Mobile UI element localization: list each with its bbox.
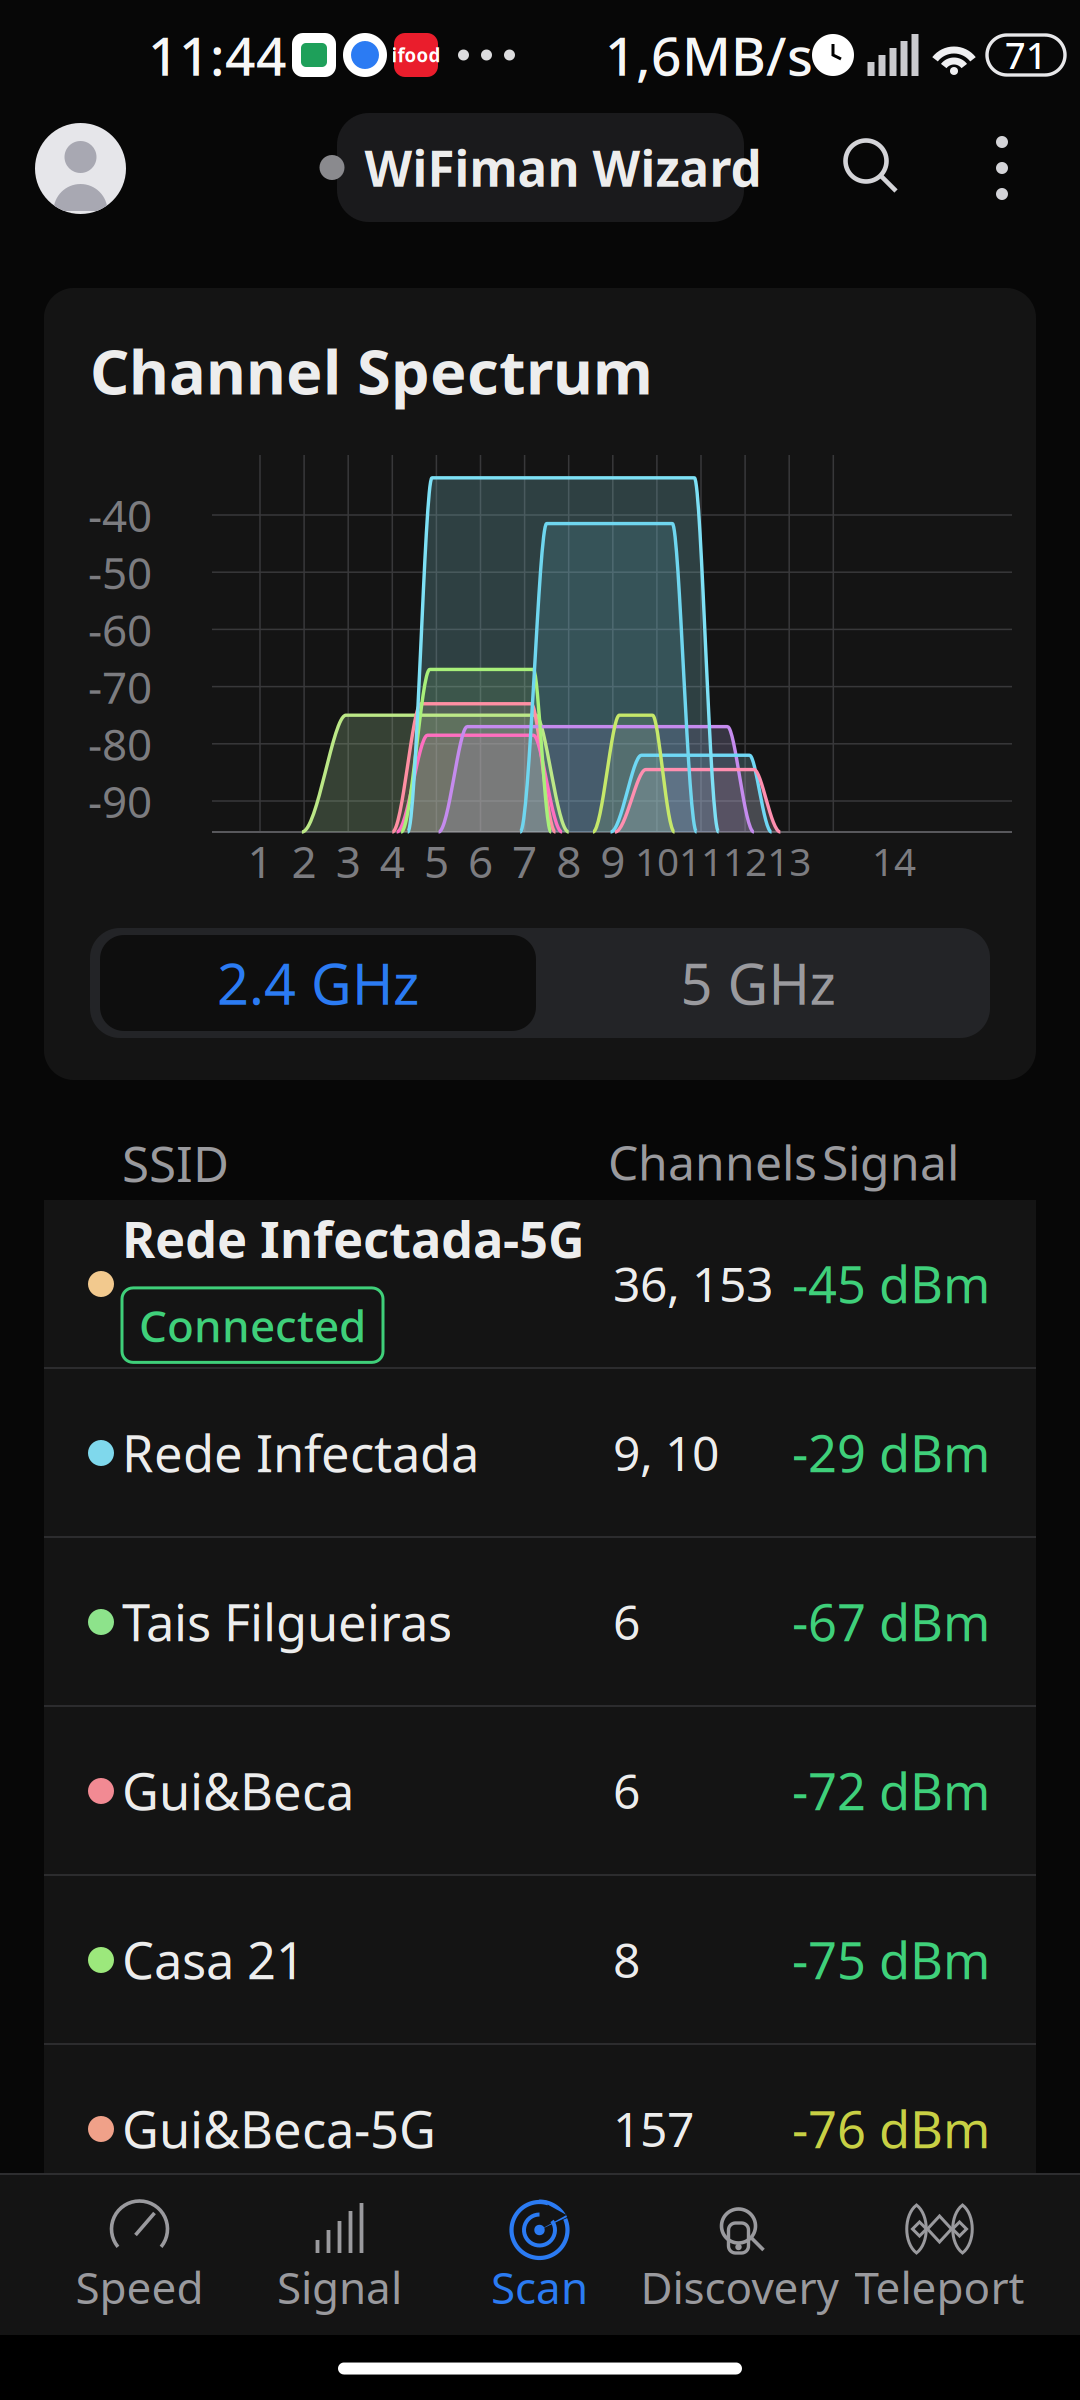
staticText: 9 xyxy=(600,832,625,890)
staticText: -75 dBm xyxy=(792,1926,990,1993)
staticText: -29 dBm xyxy=(792,1419,990,1486)
staticText: -76 dBm xyxy=(792,2095,990,2162)
button[interactable]: Signal xyxy=(239,2175,439,2335)
staticText: 2.4 GHz xyxy=(217,946,419,1020)
staticText: -70 xyxy=(88,657,152,716)
staticText: 1 xyxy=(247,832,272,890)
button[interactable]: Tais Filgueiras xyxy=(44,1538,1036,1705)
staticText: 11 xyxy=(679,835,723,887)
button[interactable]: Rede Infectada-5G xyxy=(44,1200,1036,1367)
staticText: 3 xyxy=(336,832,361,890)
staticText: Speed xyxy=(75,2258,203,2316)
button[interactable]: Scan xyxy=(439,2175,639,2335)
button[interactable]: 5 GHz xyxy=(536,935,980,1031)
button[interactable]: 2.4 GHz xyxy=(100,935,536,1031)
staticText: Rede Infectada-5G xyxy=(122,1205,585,1272)
staticText: 7 xyxy=(512,832,537,890)
button[interactable]: WiFiman Wizard xyxy=(337,113,744,222)
staticText: -40 xyxy=(88,486,152,544)
staticText: Rede Infectada xyxy=(122,1419,479,1486)
button[interactable]: More options xyxy=(967,118,1037,218)
staticText: Channels xyxy=(608,1130,817,1194)
button[interactable]: Speed xyxy=(39,2175,239,2335)
staticText: Channel Spectrum xyxy=(90,330,653,411)
staticText: -67 dBm xyxy=(792,1588,990,1655)
staticText: Casa 21 xyxy=(122,1926,305,1993)
staticText: 12 xyxy=(723,835,767,887)
staticText: -90 xyxy=(88,772,152,830)
staticText: 5 xyxy=(424,832,449,890)
staticText: 10 xyxy=(635,835,679,887)
staticText: -50 xyxy=(88,543,152,601)
staticText: 8 xyxy=(556,832,581,890)
staticText: Connected xyxy=(139,1296,366,1354)
staticText: Gui&Beca-5G xyxy=(122,2095,436,2162)
staticText: -60 xyxy=(88,600,152,659)
staticText: -72 dBm xyxy=(792,1757,990,1824)
staticText: 5 GHz xyxy=(680,946,835,1020)
staticText: 71 xyxy=(1005,31,1047,79)
button[interactable]: Profile xyxy=(35,123,126,214)
button[interactable]: Search xyxy=(843,138,903,198)
staticText: SSID xyxy=(122,1130,229,1195)
staticText: 14 xyxy=(872,835,916,887)
staticText: 11:44 xyxy=(148,20,287,90)
staticText: Teleport xyxy=(854,2258,1024,2316)
staticText: Gui&Beca xyxy=(122,1757,354,1824)
staticText: Scan xyxy=(491,2258,588,2316)
staticText: 36, 153 xyxy=(613,1252,773,1315)
button[interactable]: Discovery xyxy=(639,2175,839,2335)
staticText: 4 xyxy=(380,832,405,890)
button[interactable]: Casa 21 xyxy=(44,1876,1036,2043)
staticText: 1,6MB/s xyxy=(605,20,813,90)
staticText: ifood xyxy=(391,43,440,67)
staticText: 6 xyxy=(613,1590,640,1653)
button[interactable]: Teleport xyxy=(839,2175,1039,2335)
staticText: 8 xyxy=(613,1928,640,1991)
staticText: Tais Filgueiras xyxy=(122,1588,452,1655)
button[interactable]: Gui&Beca-5G xyxy=(44,2045,1036,2212)
staticText: Signal xyxy=(822,1130,959,1194)
staticText: Signal xyxy=(277,2258,402,2316)
button[interactable]: Rede Infectada xyxy=(44,1369,1036,1536)
staticText: 6 xyxy=(613,1759,640,1822)
staticText: 9, 10 xyxy=(613,1421,719,1484)
staticText: -80 xyxy=(88,715,152,773)
staticText: WiFiman Wizard xyxy=(364,135,761,200)
staticText: Discovery xyxy=(640,2258,838,2316)
staticText: 6 xyxy=(468,832,493,890)
staticText: 157 xyxy=(613,2097,694,2160)
button[interactable]: Gui&Beca xyxy=(44,1707,1036,1874)
staticText: 13 xyxy=(767,835,811,887)
staticText: -45 dBm xyxy=(792,1250,990,1317)
staticText: 2 xyxy=(292,832,317,890)
